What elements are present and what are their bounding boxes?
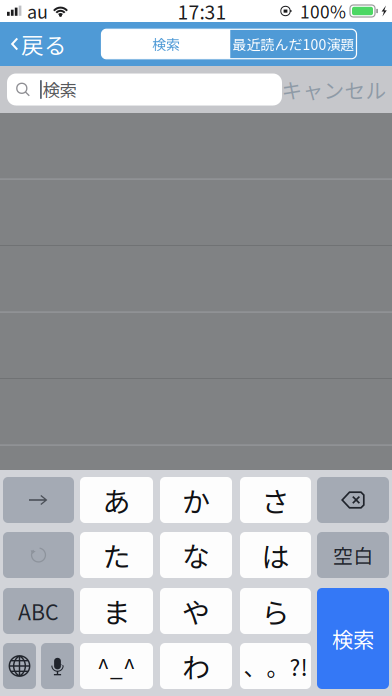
button[interactable]: ABC bbox=[3, 588, 74, 634]
button[interactable]: わ bbox=[160, 643, 232, 689]
staticText: キャンセル bbox=[281, 74, 386, 104]
button[interactable]: た bbox=[80, 532, 153, 578]
staticText: な bbox=[182, 535, 210, 575]
staticText: さ bbox=[261, 480, 289, 520]
button[interactable]: キャンセル bbox=[282, 72, 386, 106]
staticText: ABC bbox=[18, 596, 59, 626]
staticText: は bbox=[261, 535, 289, 575]
button[interactable]: な bbox=[160, 532, 232, 578]
staticText: 検索 bbox=[152, 34, 180, 54]
button[interactable]: 最近読んだ100演題 bbox=[230, 29, 356, 59]
staticText: au bbox=[27, 0, 48, 24]
staticText: ^_^ bbox=[97, 650, 136, 682]
staticText: 戻る bbox=[21, 28, 67, 60]
staticText: ら bbox=[261, 591, 289, 631]
button[interactable]: 、。?! bbox=[240, 643, 311, 689]
staticText: た bbox=[102, 535, 130, 575]
button[interactable]: 戻る bbox=[0, 24, 75, 64]
staticText: 検索 bbox=[43, 77, 77, 102]
staticText: 100% bbox=[300, 0, 346, 24]
staticText: あ bbox=[102, 480, 130, 520]
button[interactable]: あ bbox=[80, 477, 153, 523]
button[interactable] bbox=[3, 477, 74, 523]
button[interactable]: ^_^ bbox=[80, 643, 153, 689]
staticText: 、。?! bbox=[243, 650, 307, 682]
button[interactable]: 空白 bbox=[317, 532, 389, 578]
staticText: や bbox=[182, 591, 210, 631]
button[interactable]: Switch keyboard bbox=[3, 643, 36, 689]
button[interactable]: 検索 bbox=[101, 29, 230, 59]
button[interactable]: Dictation bbox=[41, 643, 74, 689]
staticText: ま bbox=[102, 591, 130, 631]
staticText: 最近読んだ100演題 bbox=[232, 34, 354, 54]
staticText: 空白 bbox=[333, 540, 373, 569]
button[interactable]: か bbox=[160, 477, 232, 523]
staticText: か bbox=[182, 480, 210, 520]
button[interactable]: 検索 bbox=[317, 588, 389, 689]
button[interactable]: さ bbox=[240, 477, 311, 523]
staticText: わ bbox=[182, 646, 210, 686]
button[interactable]: ま bbox=[80, 588, 153, 634]
button[interactable] bbox=[317, 477, 389, 523]
button[interactable]: ら bbox=[240, 588, 311, 634]
button[interactable]: や bbox=[160, 588, 232, 634]
button[interactable]: は bbox=[240, 532, 311, 578]
staticText: 17:31 bbox=[177, 0, 226, 25]
staticText: 検索 bbox=[332, 623, 374, 654]
button[interactable] bbox=[3, 532, 74, 578]
